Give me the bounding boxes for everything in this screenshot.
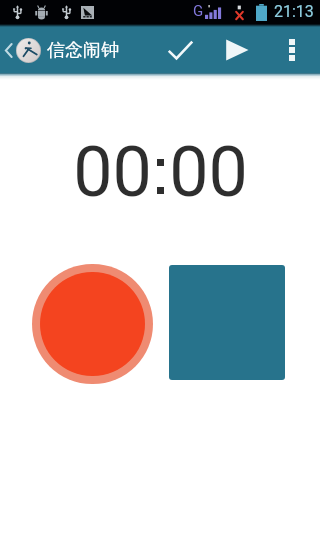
button[interactable]: Done: [151, 27, 207, 73]
button[interactable]: More options: [263, 27, 319, 73]
staticText: 信念闹钟: [47, 39, 119, 62]
button[interactable]: Play: [207, 27, 263, 73]
button[interactable]: Record: [32, 264, 153, 384]
staticText: 00 00: [73, 131, 248, 213]
button[interactable]: Navigate up: [0, 27, 43, 73]
button[interactable]: Stop: [169, 265, 285, 380]
staticText: G: [193, 2, 204, 20]
staticText: 21:13: [274, 2, 314, 21]
